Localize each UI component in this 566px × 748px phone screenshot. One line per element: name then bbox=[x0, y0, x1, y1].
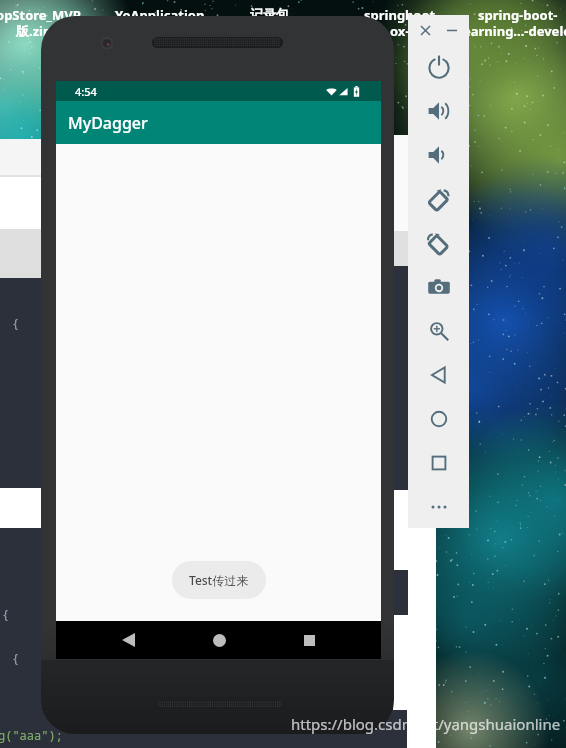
staticText: { bbox=[12, 650, 20, 666]
button[interactable]: Test传过来 bbox=[172, 561, 266, 599]
button[interactable]: Volume up bbox=[408, 89, 469, 133]
staticText: MyDagger bbox=[68, 112, 148, 134]
staticText: { bbox=[12, 315, 20, 331]
staticText: 记录包 bbox=[250, 6, 289, 22]
staticText: ox-r bbox=[390, 22, 416, 40]
button[interactable]: Recent apps bbox=[290, 621, 328, 659]
button[interactable]: Rotate right bbox=[408, 221, 469, 265]
button[interactable]: Home bbox=[408, 397, 469, 441]
button[interactable]: Back bbox=[408, 353, 469, 397]
button[interactable]: Power bbox=[408, 45, 469, 89]
staticText: 版.zip bbox=[16, 22, 52, 40]
staticText: 4:54 bbox=[75, 84, 97, 99]
button[interactable]: Rotate left bbox=[408, 177, 469, 221]
staticText: opStore_MVP bbox=[0, 6, 81, 24]
button[interactable]: Minimize bbox=[442, 20, 462, 40]
button[interactable]: Overview bbox=[408, 441, 469, 485]
button[interactable]: More bbox=[408, 485, 469, 528]
staticText: { bbox=[2, 606, 10, 622]
staticText: YoApplication bbox=[115, 6, 205, 24]
staticText: https://blog.csdn.net/yangshuaionline bbox=[291, 714, 561, 734]
staticText: Test传过来 bbox=[189, 572, 249, 588]
staticText: g("aaa"); bbox=[0, 727, 63, 743]
button[interactable]: Close bbox=[415, 20, 435, 40]
button[interactable]: Zoom bbox=[408, 309, 469, 353]
staticText: spring-boot- bbox=[478, 6, 558, 24]
button[interactable]: Back bbox=[109, 621, 147, 659]
staticText: springboot bbox=[364, 6, 436, 24]
button[interactable]: Take screenshot bbox=[408, 265, 469, 309]
staticText: earning...-develo bbox=[463, 22, 566, 40]
button[interactable]: Home bbox=[200, 621, 238, 659]
button[interactable]: Volume down bbox=[408, 133, 469, 177]
